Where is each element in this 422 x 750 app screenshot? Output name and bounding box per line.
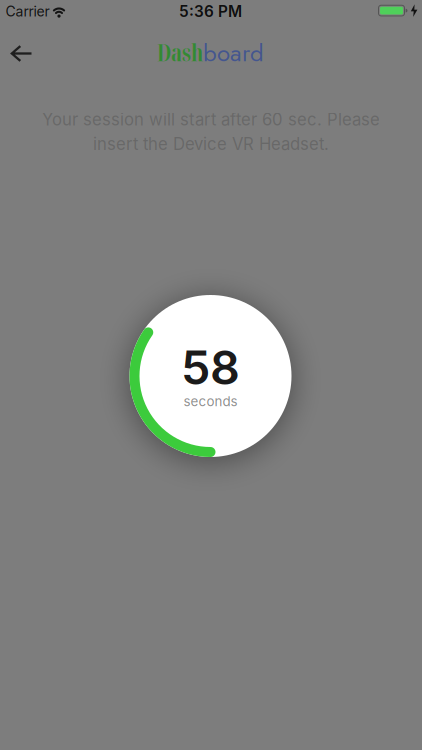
staticText: Carrier [5,3,49,20]
staticText: seconds [183,393,237,409]
staticText: board [203,36,264,70]
staticText: Dash [157,37,203,68]
button[interactable]: Back [0,31,44,75]
staticText: 5:36 PM [179,2,242,21]
staticText: 58 [181,339,240,396]
staticText: insert the Device VR Headset. [93,134,329,154]
staticText: Your session will start after 60 sec. Pl… [42,109,380,130]
